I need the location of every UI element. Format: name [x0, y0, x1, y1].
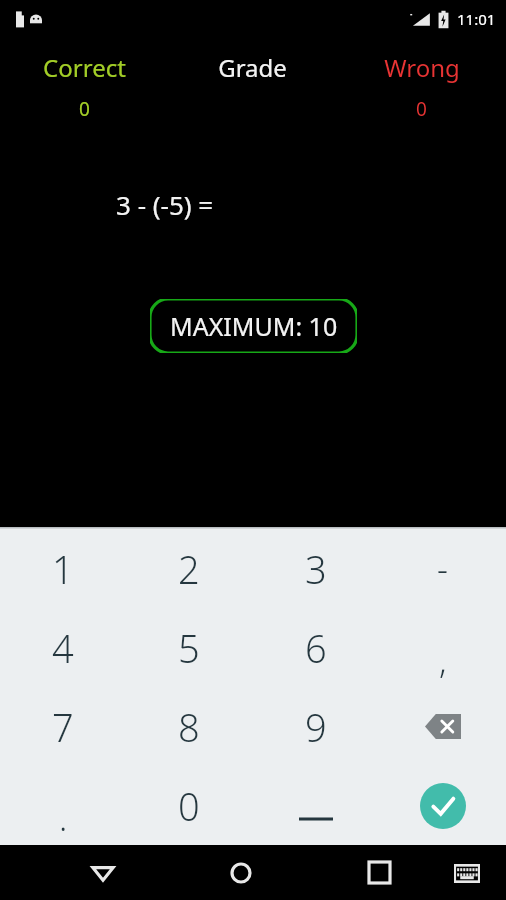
button[interactable]: 7 [0, 687, 126, 766]
staticText: . [59, 795, 68, 841]
staticText: Grade [218, 51, 287, 84]
button[interactable]: 3 [252, 529, 379, 608]
staticText: , [439, 637, 447, 683]
staticText: 9 [305, 701, 327, 753]
button[interactable]: 2 [126, 529, 252, 608]
staticText: - [437, 546, 448, 592]
staticText: 0 [416, 96, 427, 122]
staticText: 8 [178, 701, 200, 753]
staticText: MAXIMUM: 10 [170, 309, 338, 343]
button[interactable]: Confirm [379, 766, 506, 845]
button[interactable] [252, 766, 379, 845]
button[interactable]: 0 [126, 766, 252, 845]
button[interactable]: Back [75, 845, 131, 900]
button[interactable]: MAXIMUM: 10 [150, 299, 357, 353]
staticText: 0 [178, 780, 200, 832]
staticText: 1 [52, 543, 74, 595]
button[interactable]: 1 [0, 529, 126, 608]
staticText: 0 [79, 96, 90, 122]
button[interactable]: Switch keyboard [441, 847, 493, 899]
staticText: 5 [178, 622, 200, 674]
button[interactable]: 4 [0, 608, 126, 687]
button[interactable]: Grade [168, 51, 337, 96]
staticText: Correct [43, 51, 126, 84]
staticText: 11:01 [457, 9, 496, 29]
button[interactable]: 8 [126, 687, 252, 766]
button[interactable]: 6 [252, 608, 379, 687]
button[interactable]: Backspace [379, 687, 506, 766]
staticText: 7 [52, 701, 74, 753]
staticText: 6 [305, 622, 327, 674]
button[interactable]: 9 [252, 687, 379, 766]
button[interactable]: , [379, 608, 506, 687]
staticText: 4 [52, 622, 74, 674]
button[interactable]: Home [213, 845, 269, 900]
button[interactable]: Recent apps [351, 845, 407, 900]
staticText: 2 [178, 543, 200, 595]
button[interactable]: . [0, 766, 126, 845]
staticText: 3 [305, 543, 327, 595]
button[interactable]: 5 [126, 608, 252, 687]
staticText: 3 - (-5) = [116, 187, 214, 222]
button[interactable]: Correct [0, 51, 168, 122]
button[interactable]: Wrong [337, 51, 506, 122]
button[interactable]: - [379, 529, 506, 608]
staticText: Wrong [384, 51, 460, 84]
